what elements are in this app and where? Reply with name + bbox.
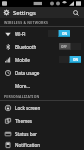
button[interactable]: Toggle on bbox=[48, 30, 70, 37]
staticText: WIRELESS & NETWORKS bbox=[4, 20, 49, 25]
staticText: Lock screen bbox=[15, 105, 41, 111]
button[interactable]: Status bar bbox=[0, 127, 84, 140]
staticText: OFF bbox=[61, 45, 68, 49]
button[interactable]: Data usage bbox=[0, 66, 84, 79]
staticText: Mobile networks bbox=[15, 57, 37, 63]
button[interactable]: Toggle on bbox=[59, 56, 81, 63]
staticText: Notification drawer bbox=[15, 142, 48, 148]
button[interactable]: Themes bbox=[0, 114, 84, 127]
button[interactable]: Mobile networks bbox=[0, 53, 84, 66]
staticText: Wi-Fi bbox=[15, 31, 26, 37]
button[interactable]: Bluetooth bbox=[0, 40, 84, 53]
button[interactable]: Toggle off bbox=[59, 43, 81, 50]
staticText: Data usage bbox=[15, 70, 40, 76]
staticText: ON bbox=[73, 58, 79, 62]
staticText: More... bbox=[15, 83, 31, 89]
staticText: Themes bbox=[15, 118, 33, 124]
button[interactable]: More... bbox=[0, 79, 84, 92]
staticText: Settings bbox=[13, 9, 36, 17]
staticText: ON bbox=[62, 32, 68, 36]
button[interactable]: Lock screen bbox=[0, 101, 84, 114]
staticText: Status bar bbox=[15, 131, 37, 137]
staticText: PERSONALIZATION bbox=[4, 94, 40, 99]
button[interactable]: Notification drawer bbox=[0, 140, 84, 150]
button[interactable]: Wi-Fi bbox=[0, 27, 84, 40]
button[interactable]: Search bbox=[71, 8, 81, 18]
staticText: Bluetooth bbox=[15, 44, 37, 50]
